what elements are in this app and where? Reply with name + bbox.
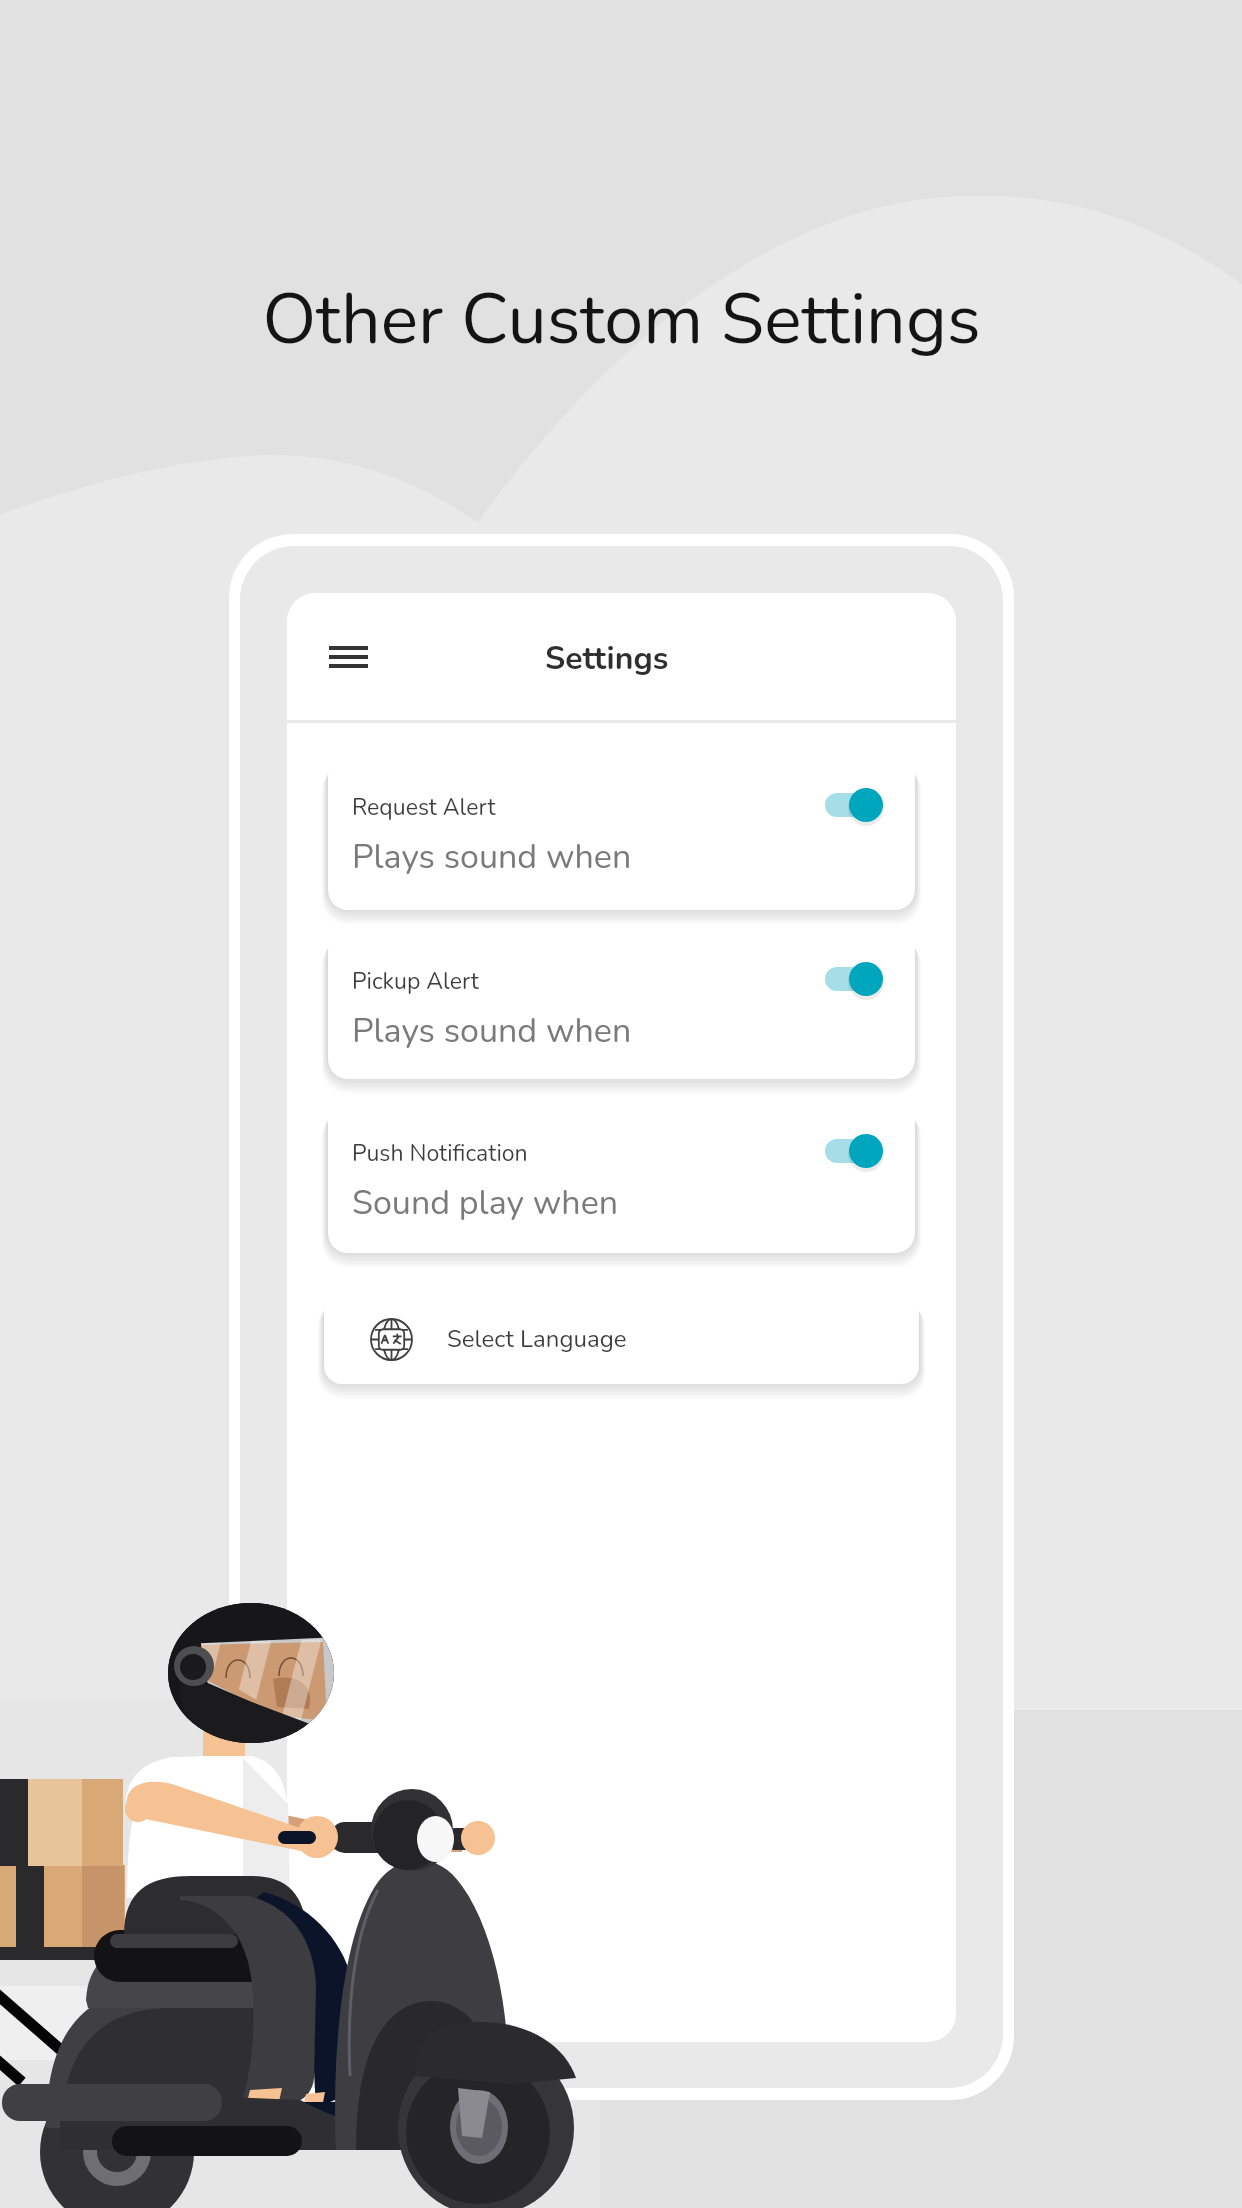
button[interactable]: Request Alert: [328, 756, 915, 910]
button[interactable]: Toggle Request Alert: [825, 785, 887, 825]
button[interactable]: Toggle Pickup Alert: [825, 959, 887, 999]
staticText: Push Notification: [352, 1138, 528, 1169]
button[interactable]: Open navigation menu: [318, 627, 378, 687]
staticText: Other Custom Settings: [262, 272, 981, 367]
button[interactable]: Pickup Alert: [328, 930, 915, 1079]
staticText: Request Alert: [352, 792, 496, 823]
button[interactable]: Toggle Push Notification: [825, 1131, 887, 1171]
button[interactable]: Push Notification: [328, 1102, 915, 1253]
button[interactable]: Select Language: [324, 1294, 919, 1384]
staticText: Plays sound when: [352, 834, 632, 880]
staticText: Select Language: [447, 1323, 627, 1356]
staticText: Sound play when: [352, 1180, 619, 1226]
staticText: Pickup Alert: [352, 966, 479, 997]
staticText: Plays sound when: [352, 1008, 632, 1054]
staticText: Settings: [545, 637, 669, 681]
